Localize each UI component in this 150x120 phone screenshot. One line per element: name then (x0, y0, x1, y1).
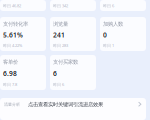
staticText: 昨日 46.82 (3, 3, 21, 8)
button[interactable]: 浏览量 (50, 17, 96, 51)
staticText: 0 (103, 31, 107, 39)
staticText: 昨日 6 (53, 82, 64, 87)
staticText: 昨日 4.22% (3, 43, 22, 48)
button[interactable]: 昨日 6 (100, 0, 146, 11)
button[interactable]: 加购人数 (100, 17, 146, 51)
button[interactable]: 支付转化率 (0, 17, 46, 51)
staticText: 5.61% (3, 31, 23, 39)
button[interactable]: 昨日 342 (50, 0, 96, 11)
button[interactable]: 流量分析 (0, 98, 146, 120)
staticText: 昨日 342 (53, 3, 68, 8)
staticText: 加购人数 (103, 21, 123, 27)
staticText: 点击查看实时关键词引流进店效果 (28, 101, 103, 108)
staticText: 支付买家数 (53, 59, 78, 65)
staticText: 昨日 1 (103, 43, 114, 48)
button[interactable]: 支付买家数 (50, 55, 96, 90)
staticText: 241 (53, 31, 65, 39)
staticText: 昨日 7.8 (3, 82, 17, 87)
staticText: 流量分析 (4, 102, 20, 107)
staticText: 6.98 (3, 69, 17, 78)
button[interactable]: 客单价 (0, 55, 46, 90)
staticText: 客单价 (3, 59, 18, 65)
staticText: 6 (53, 69, 57, 78)
staticText: 浏览量 (53, 21, 68, 27)
staticText: 昨日 6 (103, 3, 114, 8)
button[interactable]: 昨日 46.82 (0, 0, 46, 11)
staticText: 昨日 283 (53, 43, 68, 48)
staticText: 支付转化率 (3, 21, 28, 27)
